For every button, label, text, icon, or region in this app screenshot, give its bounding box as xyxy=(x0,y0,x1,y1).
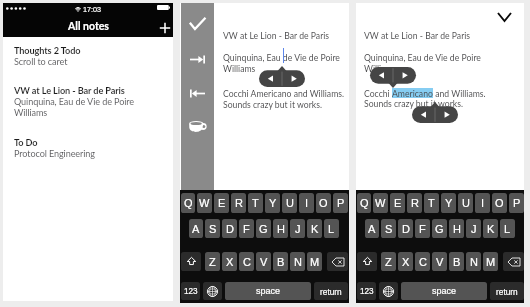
button[interactable]: J xyxy=(466,219,481,238)
button[interactable]: H xyxy=(273,219,288,238)
staticText: I xyxy=(481,197,485,209)
button[interactable]: 123 xyxy=(181,282,200,300)
staticText: S xyxy=(209,223,217,235)
button[interactable]: T xyxy=(424,193,439,213)
button[interactable]: A xyxy=(189,219,203,238)
staticText: and Williams. xyxy=(433,88,486,98)
button[interactable]: G xyxy=(256,219,271,238)
button[interactable]: B xyxy=(449,252,464,271)
button[interactable]: Y xyxy=(441,193,456,213)
button[interactable]: Backspace xyxy=(503,252,524,271)
button[interactable]: K xyxy=(307,219,322,238)
button[interactable]: E xyxy=(390,193,405,213)
staticText: Y xyxy=(269,197,277,209)
staticText: M xyxy=(486,256,496,268)
button[interactable]: P xyxy=(333,193,348,213)
staticText: Scroll to caret xyxy=(14,56,68,67)
button[interactable]: return xyxy=(314,282,348,300)
button[interactable]: Y xyxy=(265,193,280,213)
button[interactable]: C xyxy=(415,252,430,271)
button[interactable]: New note xyxy=(157,20,173,36)
button[interactable]: Switch keyboard xyxy=(379,282,398,300)
staticText: N xyxy=(470,256,478,268)
button[interactable]: M xyxy=(307,252,322,271)
staticText: Z xyxy=(209,256,216,268)
staticText: Z xyxy=(385,256,392,268)
button[interactable]: F xyxy=(239,219,254,238)
button[interactable]: D xyxy=(222,219,237,238)
button[interactable]: J xyxy=(290,219,305,238)
button[interactable]: U xyxy=(458,193,473,213)
staticText: 17:03 xyxy=(83,5,101,13)
staticText: L xyxy=(328,223,335,235)
button[interactable]: N xyxy=(466,252,481,271)
button[interactable]: I xyxy=(299,193,314,213)
button[interactable]: Z xyxy=(205,252,220,271)
button[interactable]: X xyxy=(222,252,237,271)
button[interactable]: R xyxy=(231,193,246,213)
button[interactable]: K xyxy=(483,219,498,238)
staticText: H xyxy=(453,223,461,235)
button[interactable]: M xyxy=(483,252,498,271)
button[interactable]: X xyxy=(398,252,413,271)
button[interactable]: H xyxy=(449,219,464,238)
button[interactable]: Done xyxy=(181,10,214,36)
button[interactable]: space xyxy=(401,282,487,300)
staticText: Americano xyxy=(392,88,433,98)
button[interactable]: U xyxy=(282,193,297,213)
button[interactable]: Thoughts 2 Todo xyxy=(3,45,173,67)
button[interactable]: To Do xyxy=(3,137,173,159)
staticText: Quinquina, Eau de Vie de Poire xyxy=(14,96,135,107)
button[interactable]: S xyxy=(381,219,396,238)
button[interactable]: VW at Le Lion - Bar de Paris xyxy=(3,85,173,118)
button[interactable]: Coffee break xyxy=(181,114,214,140)
button[interactable]: W xyxy=(197,193,212,213)
button[interactable]: E xyxy=(214,193,229,213)
staticText: R xyxy=(235,197,243,209)
button[interactable]: L xyxy=(324,219,339,238)
staticText: P xyxy=(513,197,521,209)
staticText: P xyxy=(337,197,345,209)
button[interactable]: S xyxy=(205,219,220,238)
button[interactable]: Q xyxy=(357,193,371,213)
button[interactable]: Shift xyxy=(181,252,201,271)
button[interactable]: I xyxy=(475,193,490,213)
staticText: 123 xyxy=(184,287,198,296)
button[interactable]: P xyxy=(509,193,524,213)
staticText: U xyxy=(462,197,470,209)
button[interactable]: T xyxy=(248,193,263,213)
button[interactable]: F xyxy=(415,219,430,238)
button[interactable]: W xyxy=(373,193,388,213)
button[interactable]: R xyxy=(407,193,422,213)
button[interactable]: O xyxy=(492,193,507,213)
button[interactable]: L xyxy=(500,219,515,238)
button[interactable]: V xyxy=(256,252,271,271)
button[interactable]: N xyxy=(290,252,305,271)
button[interactable]: Backspace xyxy=(327,252,348,271)
button[interactable]: Hide keyboard xyxy=(494,7,514,27)
button[interactable]: 123 xyxy=(357,282,376,300)
button[interactable]: return xyxy=(490,282,524,300)
button[interactable]: Z xyxy=(381,252,396,271)
staticText: Cocchi Americano and Williams. Sounds cr… xyxy=(223,88,345,110)
button[interactable]: Shift xyxy=(357,252,377,271)
button[interactable]: Q xyxy=(181,193,195,213)
staticText: return xyxy=(320,287,342,296)
staticText: E xyxy=(394,197,402,209)
button[interactable]: G xyxy=(432,219,447,238)
staticText: E xyxy=(218,197,226,209)
staticText: Q xyxy=(184,197,193,209)
button[interactable]: space xyxy=(225,282,311,300)
staticText: N xyxy=(294,256,302,268)
button[interactable]: C xyxy=(239,252,254,271)
button[interactable]: Switch keyboard xyxy=(203,282,222,300)
staticText: VW at Le Lion - Bar de Paris xyxy=(364,30,471,40)
button[interactable]: B xyxy=(273,252,288,271)
button[interactable]: A xyxy=(365,219,379,238)
button[interactable]: D xyxy=(398,219,413,238)
staticText: 123 xyxy=(360,287,374,296)
button[interactable]: V xyxy=(432,252,447,271)
button[interactable]: Outdent xyxy=(181,80,214,106)
button[interactable]: Indent xyxy=(181,46,214,72)
button[interactable]: O xyxy=(316,193,331,213)
